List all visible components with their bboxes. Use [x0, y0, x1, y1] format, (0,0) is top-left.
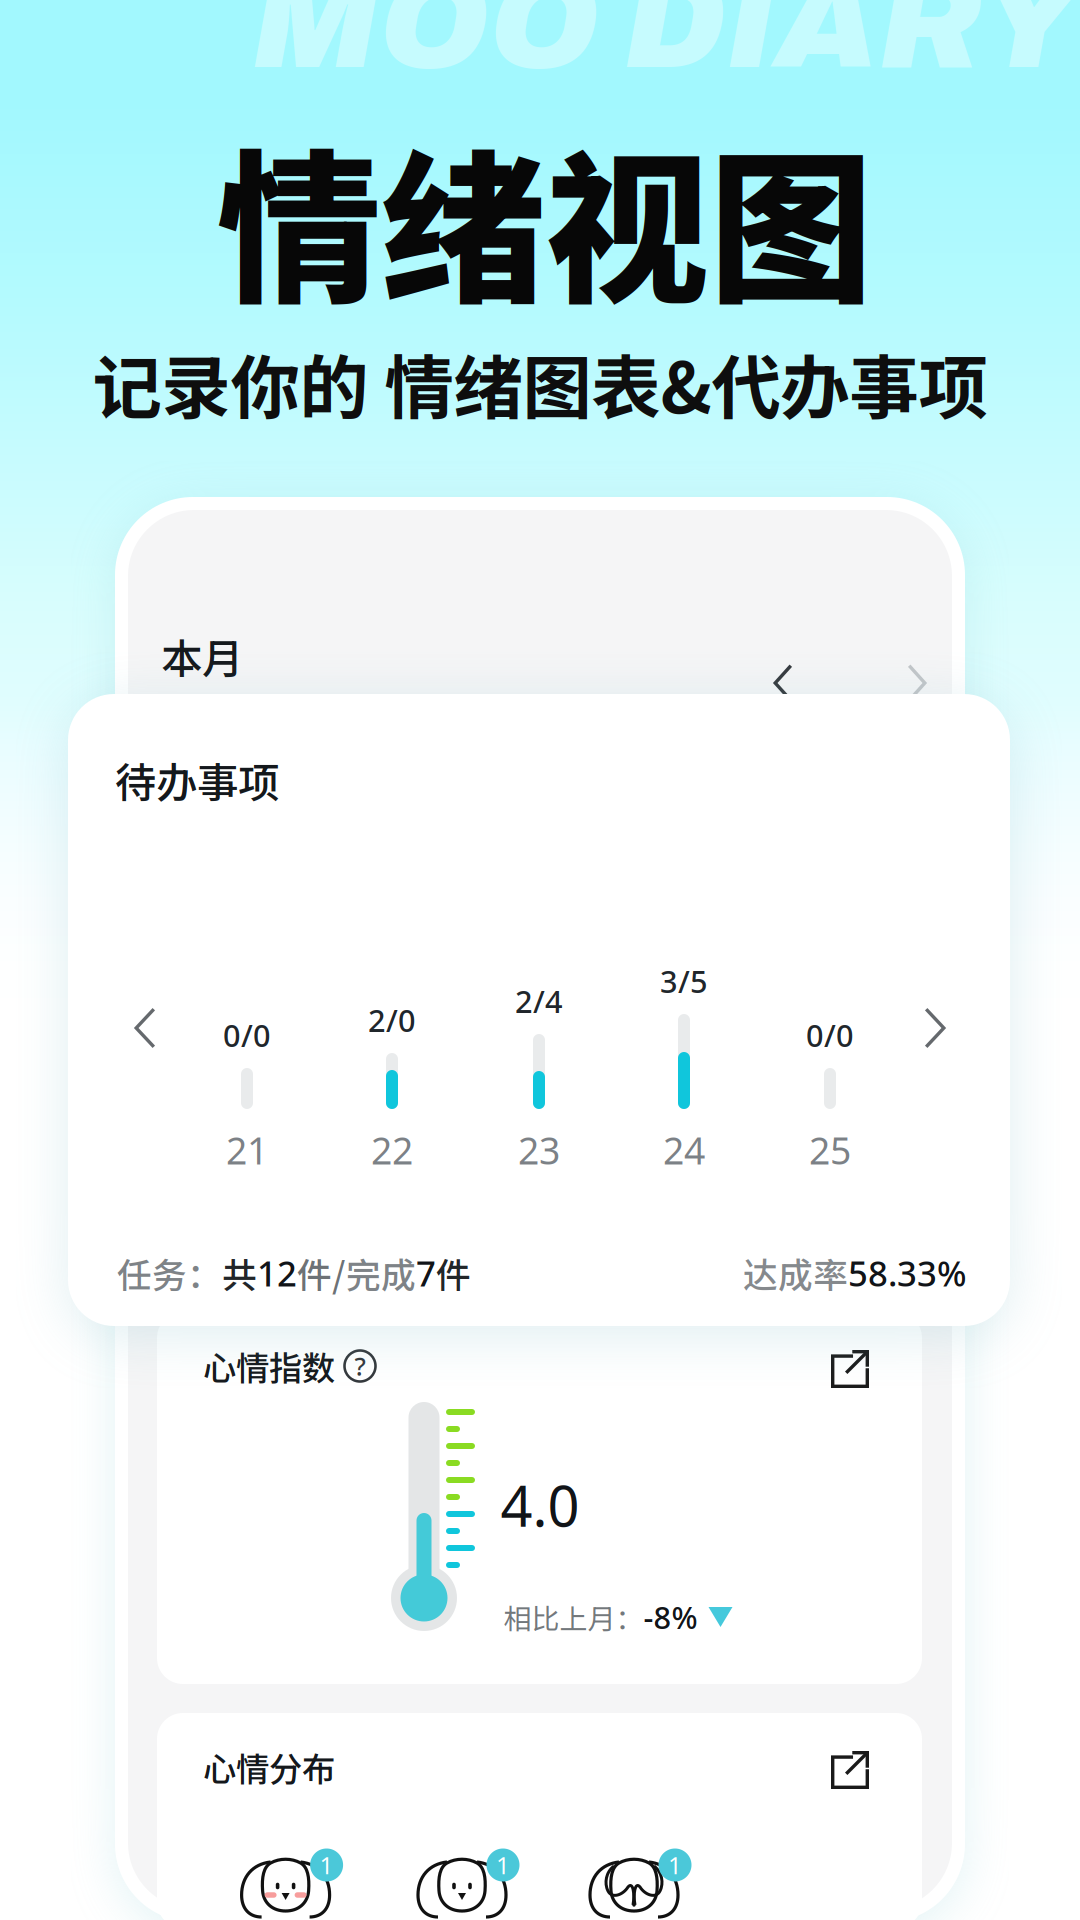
staticText: 0/0 — [223, 1014, 271, 1056]
staticText: 件 — [436, 1248, 471, 1298]
button[interactable]: Open mood index detail — [814, 1333, 886, 1405]
staticText: 7 — [416, 1249, 436, 1297]
staticText: 达成率 — [743, 1248, 848, 1298]
staticText: 1 — [668, 1849, 682, 1881]
staticText: 2/4 — [515, 980, 563, 1022]
button[interactable]: Open mood distribution detail — [814, 1734, 886, 1806]
staticText: 完成 — [346, 1248, 416, 1298]
button[interactable]: Next week — [900, 993, 970, 1063]
staticText: 24 — [663, 1125, 705, 1175]
staticText: 25 — [809, 1125, 851, 1175]
staticText: 相比上月： — [503, 1597, 643, 1637]
staticText: 共 — [222, 1248, 257, 1298]
staticText: 待办事项 — [115, 750, 279, 810]
staticText: 心情分布 — [203, 1743, 335, 1791]
staticText: 件/ — [297, 1248, 346, 1298]
staticText: 记录你的 情绪图表&代办事项 — [92, 333, 987, 433]
staticText: 任务： — [117, 1248, 222, 1298]
staticText: 1 — [496, 1849, 510, 1881]
staticText: 23 — [518, 1125, 560, 1175]
staticText: 心情指数 — [203, 1342, 335, 1390]
staticText: 1 — [320, 1849, 334, 1881]
button[interactable]: Next month — [886, 652, 948, 714]
button[interactable]: Previous month — [752, 652, 814, 714]
staticText: 2/0 — [368, 999, 416, 1041]
staticText: 12 — [257, 1249, 297, 1297]
staticText: 22 — [371, 1125, 413, 1175]
staticText: 3/5 — [660, 960, 708, 1002]
staticText: ? — [354, 1349, 365, 1383]
button[interactable]: Previous week — [110, 993, 180, 1063]
staticText: -8% — [643, 1596, 697, 1638]
staticText: 0/0 — [806, 1014, 854, 1056]
staticText: 58.33% — [848, 1249, 967, 1297]
staticText: MOO DIARY — [251, 0, 1080, 95]
staticText: 本月 — [161, 626, 243, 686]
staticText: 21 — [226, 1125, 268, 1175]
staticText: 4.0 — [500, 1467, 579, 1543]
staticText: 情绪视图 — [217, 99, 873, 337]
